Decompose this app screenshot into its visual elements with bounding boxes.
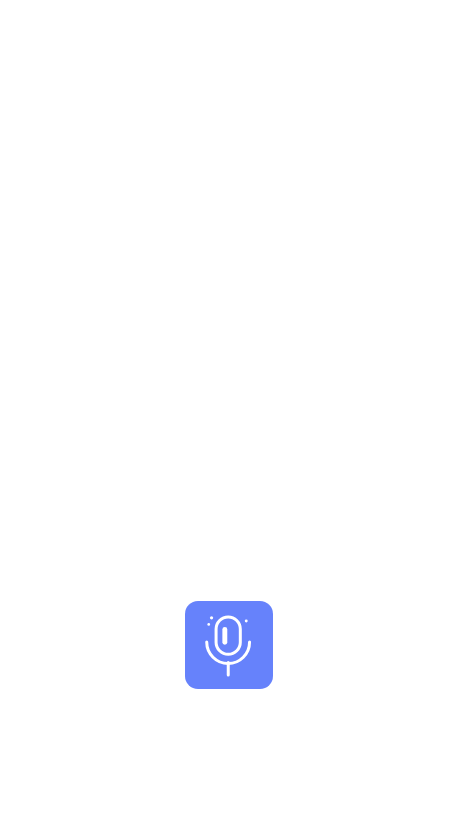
button[interactable]: Voice assistant [185,601,273,689]
